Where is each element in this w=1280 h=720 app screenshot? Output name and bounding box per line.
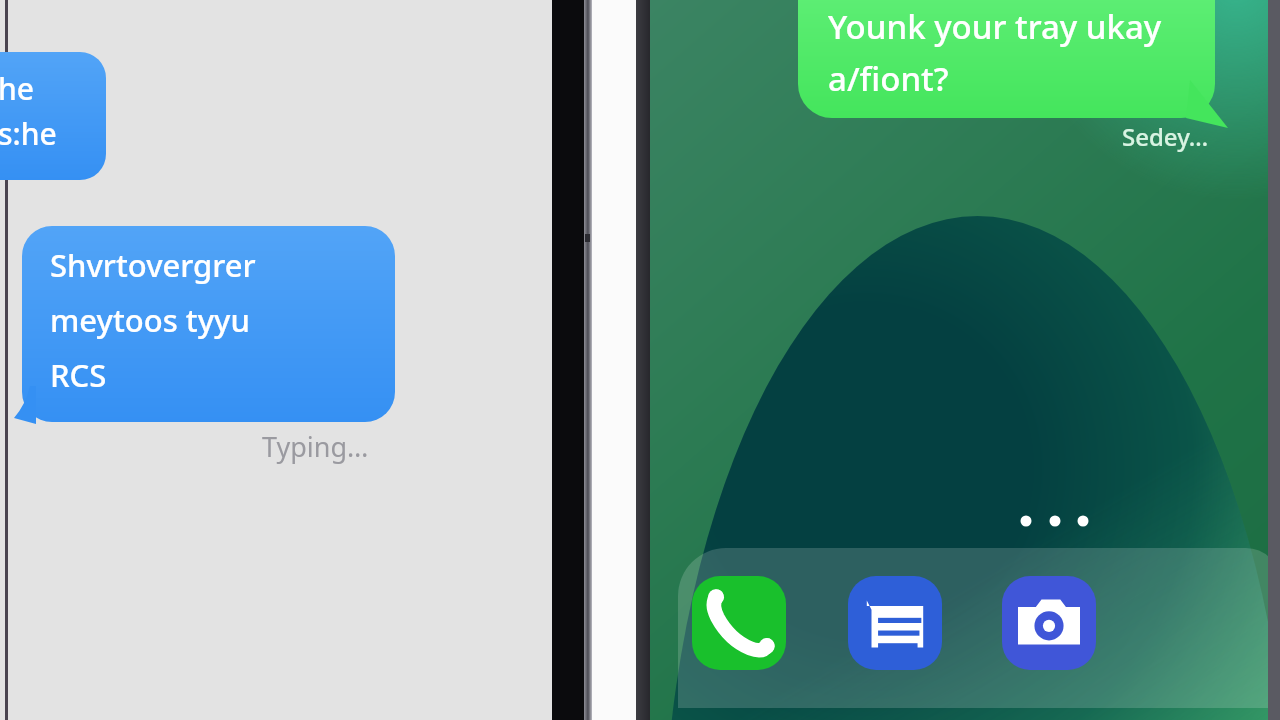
button[interactable]: Messages <box>848 576 942 670</box>
button[interactable]: Phone <box>692 576 786 670</box>
staticText: Shvrtovergrer meytoos tyyu RCS <box>50 244 256 396</box>
button[interactable]: Shvrtovergrer meytoos tyyu RCS <box>22 226 395 422</box>
button[interactable]: Camera <box>1002 576 1096 670</box>
button[interactable]: he s:he <box>0 52 106 180</box>
staticText: Sedey… <box>1122 120 1209 153</box>
staticText: he s:he <box>0 68 57 153</box>
staticText: Younk your tray ukay a/fiont? <box>828 4 1162 100</box>
staticText: Typing… <box>262 428 369 465</box>
button[interactable] <box>798 0 1215 118</box>
